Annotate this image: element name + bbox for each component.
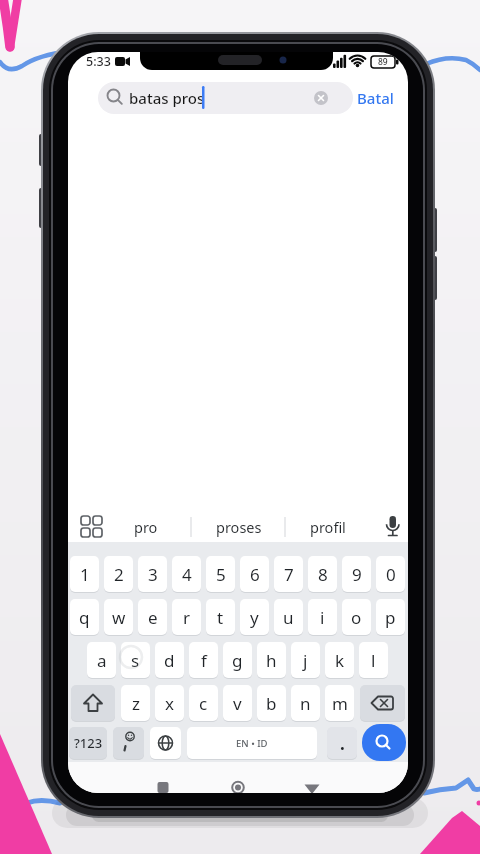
staticText: h [266,649,277,672]
staticText: k [335,649,345,672]
staticText: proses [216,517,262,537]
staticText: profil [310,517,346,537]
button[interactable]: 1 [70,556,99,592]
button[interactable] [360,685,405,721]
staticText: x [165,692,174,715]
button[interactable]: batas pros [98,82,353,114]
button[interactable]: . [327,727,357,759]
staticText: 8 [318,563,328,586]
staticText: d [164,649,175,672]
button[interactable]: e [138,599,167,635]
button[interactable]: z [121,685,150,721]
staticText: 9 [352,563,362,586]
staticText: EN • ID [236,737,268,750]
button[interactable]: g [223,642,252,678]
button[interactable]: u [274,599,303,635]
button[interactable]: a [87,642,116,678]
button[interactable]: 7 [274,556,303,592]
button[interactable]: 8 [308,556,337,592]
staticText: m [332,692,348,715]
button[interactable] [150,727,181,759]
button[interactable]: q [70,599,99,635]
staticText: q [79,606,90,629]
staticText: a [97,649,107,672]
button[interactable]: y [240,599,269,635]
button[interactable] [380,514,406,540]
staticText: . [340,732,345,755]
staticText: o [351,606,362,629]
button[interactable]: 6 [240,556,269,592]
button[interactable] [143,764,183,793]
staticText: u [283,606,294,629]
staticText: s [131,649,140,672]
staticText: j [303,649,308,672]
button[interactable]: 4 [172,556,201,592]
button[interactable] [113,727,144,759]
button[interactable]: pro [121,514,171,540]
staticText: r [183,606,191,629]
staticText: y [250,606,259,629]
button[interactable]: m [325,685,354,721]
button[interactable]: proses [209,514,269,540]
staticText: b [266,692,277,715]
staticText: 89 [378,56,388,68]
staticText: pro [134,517,158,537]
button[interactable]: l [359,642,388,678]
staticText: z [132,692,140,715]
button[interactable]: w [104,599,133,635]
button[interactable]: d [155,642,184,678]
staticText: batas pros [129,88,205,108]
staticText: g [232,649,243,672]
button[interactable]: r [172,599,201,635]
button[interactable]: ?123 [69,727,107,759]
button[interactable]: 9 [342,556,371,592]
button[interactable]: i [308,599,337,635]
button[interactable]: k [325,642,354,678]
button[interactable]: f [189,642,218,678]
staticText: i [320,606,325,629]
button[interactable]: n [291,685,320,721]
staticText: 5:33 [86,53,111,69]
button[interactable] [187,727,317,759]
staticText: e [148,606,158,629]
button[interactable]: 5 [206,556,235,592]
staticText: 0 [386,563,396,586]
staticText: 2 [114,563,124,586]
button[interactable]: x [155,685,184,721]
staticText: f [201,649,207,672]
button[interactable] [218,764,258,793]
staticText: l [371,649,376,672]
staticText: w [112,606,126,629]
button[interactable]: v [223,685,252,721]
button[interactable]: 0 [376,556,405,592]
staticText: Batal [357,88,394,108]
staticText: n [300,692,311,715]
button[interactable]: Batal [354,82,396,114]
button[interactable]: s [121,642,150,678]
staticText: t [217,606,224,629]
staticText: p [385,606,396,629]
staticText: 3 [148,563,158,586]
staticText: 4 [182,563,192,586]
button[interactable]: o [342,599,371,635]
button[interactable]: t [206,599,235,635]
button[interactable]: h [257,642,286,678]
staticText: 6 [250,563,260,586]
staticText: 7 [284,563,294,586]
button[interactable] [362,724,406,761]
button[interactable]: 3 [138,556,167,592]
button[interactable]: b [257,685,286,721]
staticText: v [233,692,242,715]
button[interactable]: j [291,642,320,678]
staticText: 1 [80,563,90,586]
button[interactable] [293,764,333,793]
button[interactable]: profil [298,514,358,540]
button[interactable]: p [376,599,405,635]
staticText: c [199,692,208,715]
staticText: ?123 [74,734,103,752]
button[interactable]: 2 [104,556,133,592]
staticText: 5 [216,563,226,586]
button[interactable] [71,685,115,721]
button[interactable]: c [189,685,218,721]
